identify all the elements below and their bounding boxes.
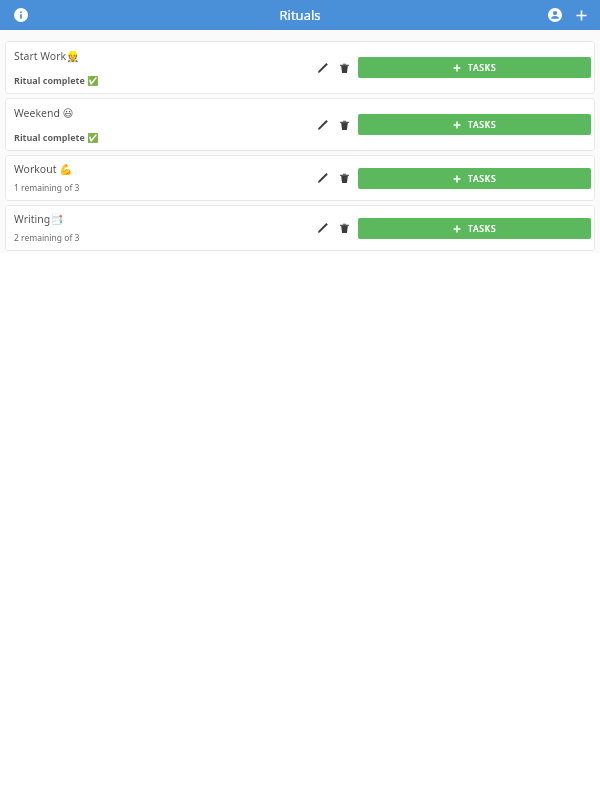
button[interactable]: About [8, 2, 34, 28]
staticText: TASKS [468, 223, 497, 235]
button[interactable]: Account [542, 2, 568, 28]
staticText: Start Work👷 [14, 49, 80, 63]
staticText: Rituals [279, 6, 321, 24]
staticText: 1 remaining of 3 [14, 182, 80, 194]
button[interactable]: Edit ritual [313, 168, 333, 188]
staticText: TASKS [468, 119, 497, 131]
button[interactable]: Edit ritual [313, 58, 333, 78]
button[interactable]: Delete ritual [334, 218, 354, 238]
button[interactable]: TASKS [358, 57, 591, 78]
staticText: Ritual complete ✅ [14, 131, 99, 143]
button[interactable]: Edit ritual [313, 218, 333, 238]
staticText: Weekend 😃 [14, 106, 74, 120]
button[interactable]: Add ritual [568, 2, 594, 28]
staticText: Workout 💪 [14, 162, 73, 176]
staticText: Writing📑 [14, 212, 64, 226]
button[interactable]: Edit ritual [313, 115, 333, 135]
button[interactable]: TASKS [358, 218, 591, 239]
button[interactable]: Delete ritual [334, 58, 354, 78]
button[interactable]: Delete ritual [334, 168, 354, 188]
button[interactable]: Delete ritual [334, 115, 354, 135]
button[interactable]: Weekend 😃 [5, 98, 595, 151]
staticText: Ritual complete ✅ [14, 74, 99, 86]
staticText: TASKS [468, 173, 497, 185]
button[interactable]: Writing📑 [5, 205, 595, 251]
button[interactable]: Workout 💪 [5, 155, 595, 201]
button[interactable]: TASKS [358, 168, 591, 189]
staticText: TASKS [468, 62, 497, 74]
button[interactable]: Start Work👷 [5, 41, 595, 94]
button[interactable]: TASKS [358, 114, 591, 135]
staticText: 2 remaining of 3 [14, 232, 80, 244]
